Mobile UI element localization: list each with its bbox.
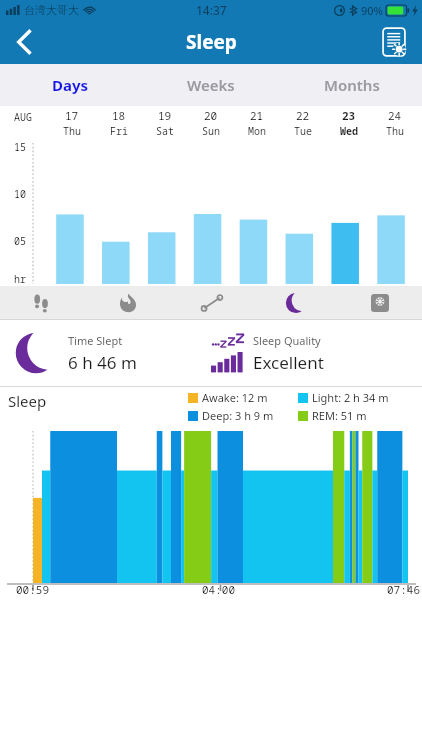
button[interactable]: 24: [372, 106, 418, 140]
staticText: 18: [112, 108, 126, 123]
staticText: 20: [204, 108, 218, 123]
staticText: 21: [250, 108, 264, 123]
staticText: 10: [14, 187, 26, 201]
staticText: hr: [14, 272, 26, 286]
staticText: 90%: [361, 3, 383, 18]
staticText: Light: 2 h 34 m: [312, 390, 389, 405]
staticText: Sleep Quality: [253, 333, 321, 348]
button[interactable]: Calories: [85, 286, 170, 319]
button[interactable]: Days: [0, 64, 140, 106]
staticText: 19: [158, 108, 172, 123]
staticText: 00:59: [16, 582, 49, 597]
staticText: Deep: 3 h 9 m: [202, 408, 274, 423]
staticText: 17: [65, 108, 79, 123]
button[interactable]: Weeks: [140, 64, 281, 106]
staticText: 07:46: [387, 582, 420, 597]
button[interactable]: 20: [188, 106, 234, 140]
button[interactable]: Weight: [338, 286, 422, 319]
staticText: 6 h 46 m: [68, 351, 137, 374]
button[interactable]: 23: [326, 106, 372, 140]
button[interactable]: 17: [48, 106, 95, 140]
button[interactable]: REM: 51 m: [298, 408, 414, 423]
staticText: 台湾大哥大: [24, 3, 79, 17]
staticText: Sleep: [8, 391, 47, 411]
staticText: REM: 51 m: [312, 408, 367, 423]
staticText: Awake: 12 m: [202, 390, 268, 405]
button[interactable]: Steps: [0, 286, 85, 319]
staticText: 15: [14, 140, 26, 154]
staticText: Wed: [340, 124, 358, 138]
staticText: AUG: [14, 110, 32, 124]
staticText: Thu: [386, 124, 404, 138]
staticText: Fri: [110, 124, 128, 138]
button[interactable]: 19: [142, 106, 188, 140]
staticText: Sat: [156, 124, 174, 138]
staticText: Weeks: [187, 75, 235, 95]
staticText: Sleep: [186, 29, 237, 55]
staticText: 05: [14, 234, 26, 248]
button[interactable]: Awake: 12 m: [188, 390, 292, 405]
button[interactable]: Sleep: [254, 286, 338, 319]
staticText: Thu: [63, 124, 81, 138]
staticText: 22: [296, 108, 310, 123]
button[interactable]: Light: 2 h 34 m: [298, 390, 414, 405]
staticText: 14:37: [196, 2, 227, 18]
staticText: Excellent: [253, 351, 324, 374]
button[interactable]: 21: [234, 106, 280, 140]
staticText: Sun: [202, 124, 220, 138]
button[interactable]: Deep: 3 h 9 m: [188, 408, 292, 423]
staticText: 04:00: [202, 582, 235, 597]
staticText: 24: [388, 108, 402, 123]
button[interactable]: 18: [95, 106, 142, 140]
staticText: Mon: [248, 124, 266, 138]
staticText: Tue: [294, 124, 312, 138]
button[interactable]: Sleep report: [374, 22, 414, 62]
button[interactable]: Distance: [170, 286, 254, 319]
staticText: Time Slept: [68, 333, 123, 348]
staticText: Days: [52, 75, 89, 95]
button[interactable]: Back: [0, 20, 48, 64]
staticText: Months: [324, 75, 380, 95]
button[interactable]: Months: [281, 64, 422, 106]
button[interactable]: 22: [280, 106, 326, 140]
staticText: 23: [342, 108, 356, 123]
button[interactable]: Time Slept: [0, 320, 422, 386]
